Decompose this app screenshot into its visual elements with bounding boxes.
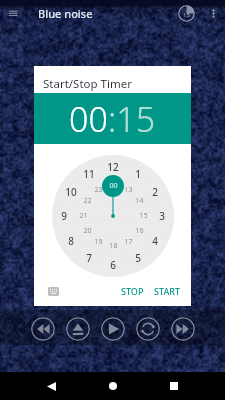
button[interactable]: Open navigation menu <box>5 5 21 21</box>
button[interactable]: Set sleep timer <box>178 5 195 22</box>
staticText: 11 <box>83 167 95 181</box>
button[interactable]: START <box>154 285 181 297</box>
staticText: 14 <box>135 196 144 206</box>
staticText: 4 <box>152 234 158 248</box>
button[interactable]: Recent apps <box>163 375 185 397</box>
staticText: 19 <box>94 237 103 247</box>
button[interactable]: More options <box>206 6 221 21</box>
button[interactable]: :15 <box>108 96 156 142</box>
staticText: 17 <box>124 237 133 247</box>
button[interactable]: Play <box>101 317 125 341</box>
staticText: 10 <box>65 185 77 199</box>
staticText: 16 <box>135 226 144 236</box>
staticText: 2 <box>152 185 158 199</box>
staticText: 3 <box>159 209 165 223</box>
staticText: 23 <box>94 185 103 195</box>
button[interactable]: Switch to keyboard input <box>48 287 59 296</box>
staticText: 6 <box>110 258 116 272</box>
staticText: 12 <box>107 160 119 174</box>
staticText: 18 <box>109 241 118 251</box>
staticText: 7 <box>86 251 92 265</box>
button[interactable]: Back <box>40 375 62 397</box>
staticText: 5 <box>135 251 141 265</box>
staticText: Blue noise <box>38 6 93 21</box>
button[interactable]: 00 <box>69 96 108 142</box>
button[interactable]: Stop <box>66 317 90 341</box>
staticText: 21 <box>79 211 88 221</box>
staticText: Start/Stop Timer <box>43 76 132 92</box>
staticText: 00 <box>109 181 118 191</box>
staticText: 9 <box>61 209 67 223</box>
staticText: 8 <box>68 234 74 248</box>
staticText: 1 <box>135 167 141 181</box>
staticText: 22 <box>83 196 92 206</box>
staticText: 15 <box>183 11 190 19</box>
button[interactable]: Rewind <box>31 317 55 341</box>
button[interactable]: Home <box>102 375 124 397</box>
staticText: 13 <box>124 185 133 195</box>
button[interactable]: Repeat <box>136 317 160 341</box>
button[interactable]: Fast forward <box>171 317 195 341</box>
button[interactable]: STOP <box>121 285 144 297</box>
staticText: 15 <box>139 211 148 221</box>
staticText: 20 <box>83 226 92 236</box>
